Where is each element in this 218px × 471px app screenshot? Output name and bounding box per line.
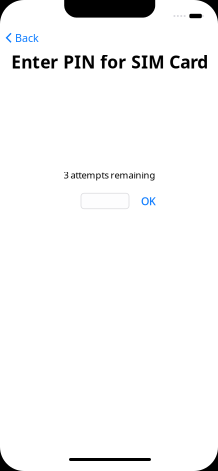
staticText: Back	[15, 31, 39, 45]
button[interactable]: OK	[137, 195, 159, 208]
staticText: Enter PIN for SIM Card	[11, 50, 208, 73]
staticText: OK	[141, 194, 156, 208]
button[interactable]: Back	[6, 31, 40, 45]
staticText: 3 attempts remaining	[63, 169, 155, 181]
